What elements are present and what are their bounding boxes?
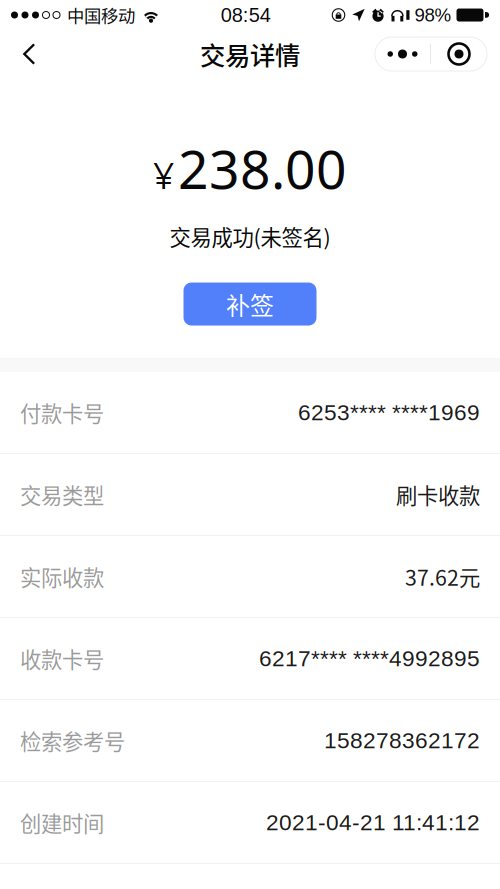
button[interactable]: 创建时间 <box>0 782 500 863</box>
button[interactable]: More options <box>375 37 430 71</box>
staticText: 收款卡号 <box>20 643 104 674</box>
staticText: 158278362172 <box>324 728 480 753</box>
staticText: 6253**** ****1969 <box>298 400 480 425</box>
staticText: 37.62元 <box>405 561 480 592</box>
staticText: 交易类型 <box>20 479 104 510</box>
button[interactable]: 补签 <box>183 282 316 325</box>
button[interactable]: Close mini program <box>431 37 487 71</box>
staticText: 检索参考号 <box>20 725 125 756</box>
button[interactable]: 实际收款 <box>0 536 500 617</box>
staticText: 中国移动 <box>67 2 135 28</box>
staticText: 付款卡号 <box>20 397 104 428</box>
staticText: 08:54 <box>221 4 271 26</box>
staticText: 刷卡收款 <box>396 479 480 510</box>
staticText: 交易详情 <box>200 36 300 72</box>
staticText: 交易成功(未签名) <box>169 221 330 251</box>
staticText: 创建时间 <box>20 807 104 838</box>
staticText: 补签 <box>226 287 274 321</box>
staticText: 2021-04-21 11:41:12 <box>266 810 480 835</box>
staticText: ¥ <box>153 149 174 200</box>
button[interactable]: 检索参考号 <box>0 700 500 781</box>
staticText: 238.00 <box>178 132 347 205</box>
button[interactable]: 交易类型 <box>0 454 500 535</box>
staticText: 6217**** ****4992895 <box>259 646 480 671</box>
button[interactable]: 收款卡号 <box>0 618 500 699</box>
button[interactable]: 付款卡号 <box>0 372 500 453</box>
staticText: 实际收款 <box>20 561 104 592</box>
staticText: 98% <box>414 5 451 25</box>
button[interactable]: Back <box>8 33 50 75</box>
